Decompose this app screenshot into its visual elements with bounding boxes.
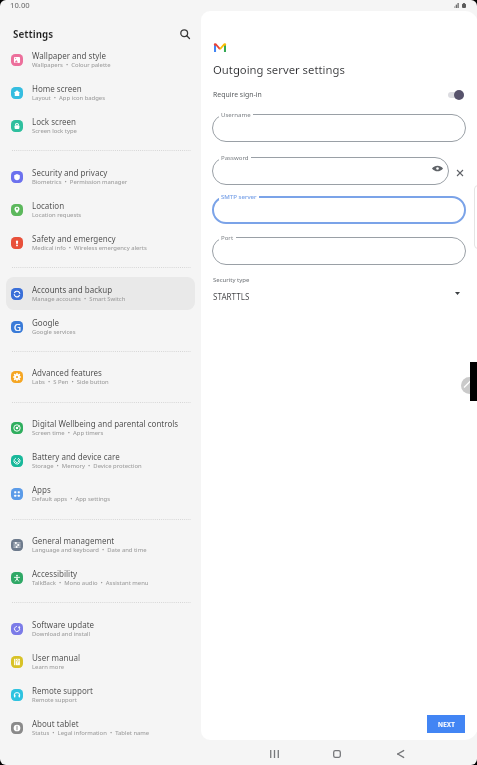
button[interactable]: Remote support — [6, 678, 195, 711]
staticText: Advanced features — [32, 367, 102, 378]
button[interactable]: Home — [325, 743, 348, 765]
button[interactable]: Safety and emergency — [6, 226, 195, 259]
staticText: Settings — [13, 28, 54, 41]
staticText: Download and install — [32, 630, 91, 638]
staticText: STARTTLS — [213, 291, 250, 302]
button[interactable]: About tablet — [6, 711, 195, 744]
staticText: Screen time • App timers — [32, 429, 104, 437]
staticText: Language and keyboard • Date and time — [32, 546, 147, 554]
staticText: Username — [221, 110, 251, 118]
button[interactable]: Advanced features — [6, 360, 195, 393]
staticText: Learn more — [32, 663, 65, 671]
staticText: Security type — [213, 276, 250, 284]
staticText: Google services — [32, 328, 76, 336]
button[interactable]: STARTTLS — [208, 287, 466, 305]
staticText: TalkBack • Mono audio • Assistant menu — [32, 579, 149, 587]
staticText: Password — [221, 153, 249, 161]
button[interactable]: Location — [6, 193, 195, 226]
staticText: Battery and device care — [32, 451, 120, 462]
staticText: Screen lock type — [32, 127, 77, 135]
staticText: Location — [32, 200, 65, 211]
staticText: Port — [221, 233, 234, 241]
staticText: Require sign-in — [213, 90, 262, 99]
button[interactable] — [212, 237, 466, 265]
button[interactable]: Digital Wellbeing and parental controls — [6, 411, 195, 444]
staticText: Lock screen — [32, 116, 77, 127]
staticText: Storage • Memory • Device protection — [32, 462, 142, 470]
button[interactable] — [212, 157, 449, 185]
staticText: 10.00 — [10, 0, 30, 10]
button[interactable]: Security and privacy — [6, 160, 195, 193]
staticText: Default apps • App settings — [32, 495, 111, 503]
staticText: Remote support — [32, 696, 77, 704]
button[interactable]: NEXT — [427, 715, 465, 733]
button[interactable]: Home screen — [6, 76, 195, 109]
staticText: G — [14, 321, 21, 333]
staticText: Security and privacy — [32, 167, 108, 178]
button[interactable]: Software update — [6, 612, 195, 645]
staticText: Labs • S Pen • Side button — [32, 378, 109, 386]
button[interactable]: G — [6, 310, 195, 343]
button[interactable] — [212, 114, 466, 142]
staticText: Remote support — [32, 685, 93, 696]
staticText: NEXT — [438, 720, 455, 729]
button[interactable] — [212, 196, 466, 224]
button[interactable]: Accounts and backup — [6, 277, 195, 310]
staticText: Outgoing server settings — [213, 62, 345, 77]
staticText: Status • Legal information • Tablet name — [32, 729, 150, 737]
button[interactable]: Wallpaper and style — [6, 43, 195, 76]
staticText: Layout • App icon badges — [32, 94, 106, 102]
staticText: Wallpapers • Colour palette — [32, 61, 111, 69]
button[interactable]: Battery and device care — [6, 444, 195, 477]
staticText: Apps — [32, 484, 51, 495]
staticText: Manage accounts • Smart Switch — [32, 295, 126, 303]
staticText: Location requests — [32, 211, 82, 219]
staticText: SMTP server — [221, 192, 257, 200]
button[interactable]: Accessibility — [6, 561, 195, 594]
staticText: Medical info • Wireless emergency alerts — [32, 244, 147, 252]
button[interactable]: Apps — [6, 477, 195, 510]
staticText: Home screen — [32, 83, 82, 94]
staticText: Accounts and backup — [32, 284, 113, 295]
button[interactable]: Lock screen — [6, 109, 195, 142]
staticText: Google — [32, 317, 59, 328]
staticText: User manual — [32, 652, 80, 663]
staticText: Accessibility — [32, 568, 78, 579]
staticText: About tablet — [32, 718, 79, 729]
button[interactable]: Back — [389, 743, 412, 765]
button[interactable]: Recent apps — [263, 743, 286, 765]
staticText: Biometrics • Permission manager — [32, 178, 128, 186]
staticText: Safety and emergency — [32, 233, 116, 244]
staticText: Wallpaper and style — [32, 50, 106, 61]
staticText: Software update — [32, 619, 95, 630]
button[interactable]: Clear — [453, 166, 467, 180]
staticText: General management — [32, 535, 115, 546]
button[interactable]: User manual — [6, 645, 195, 678]
button[interactable]: Require sign-in — [208, 84, 470, 104]
staticText: Digital Wellbeing and parental controls — [32, 418, 179, 429]
button[interactable]: General management — [6, 528, 195, 561]
button[interactable]: Search — [175, 24, 194, 43]
